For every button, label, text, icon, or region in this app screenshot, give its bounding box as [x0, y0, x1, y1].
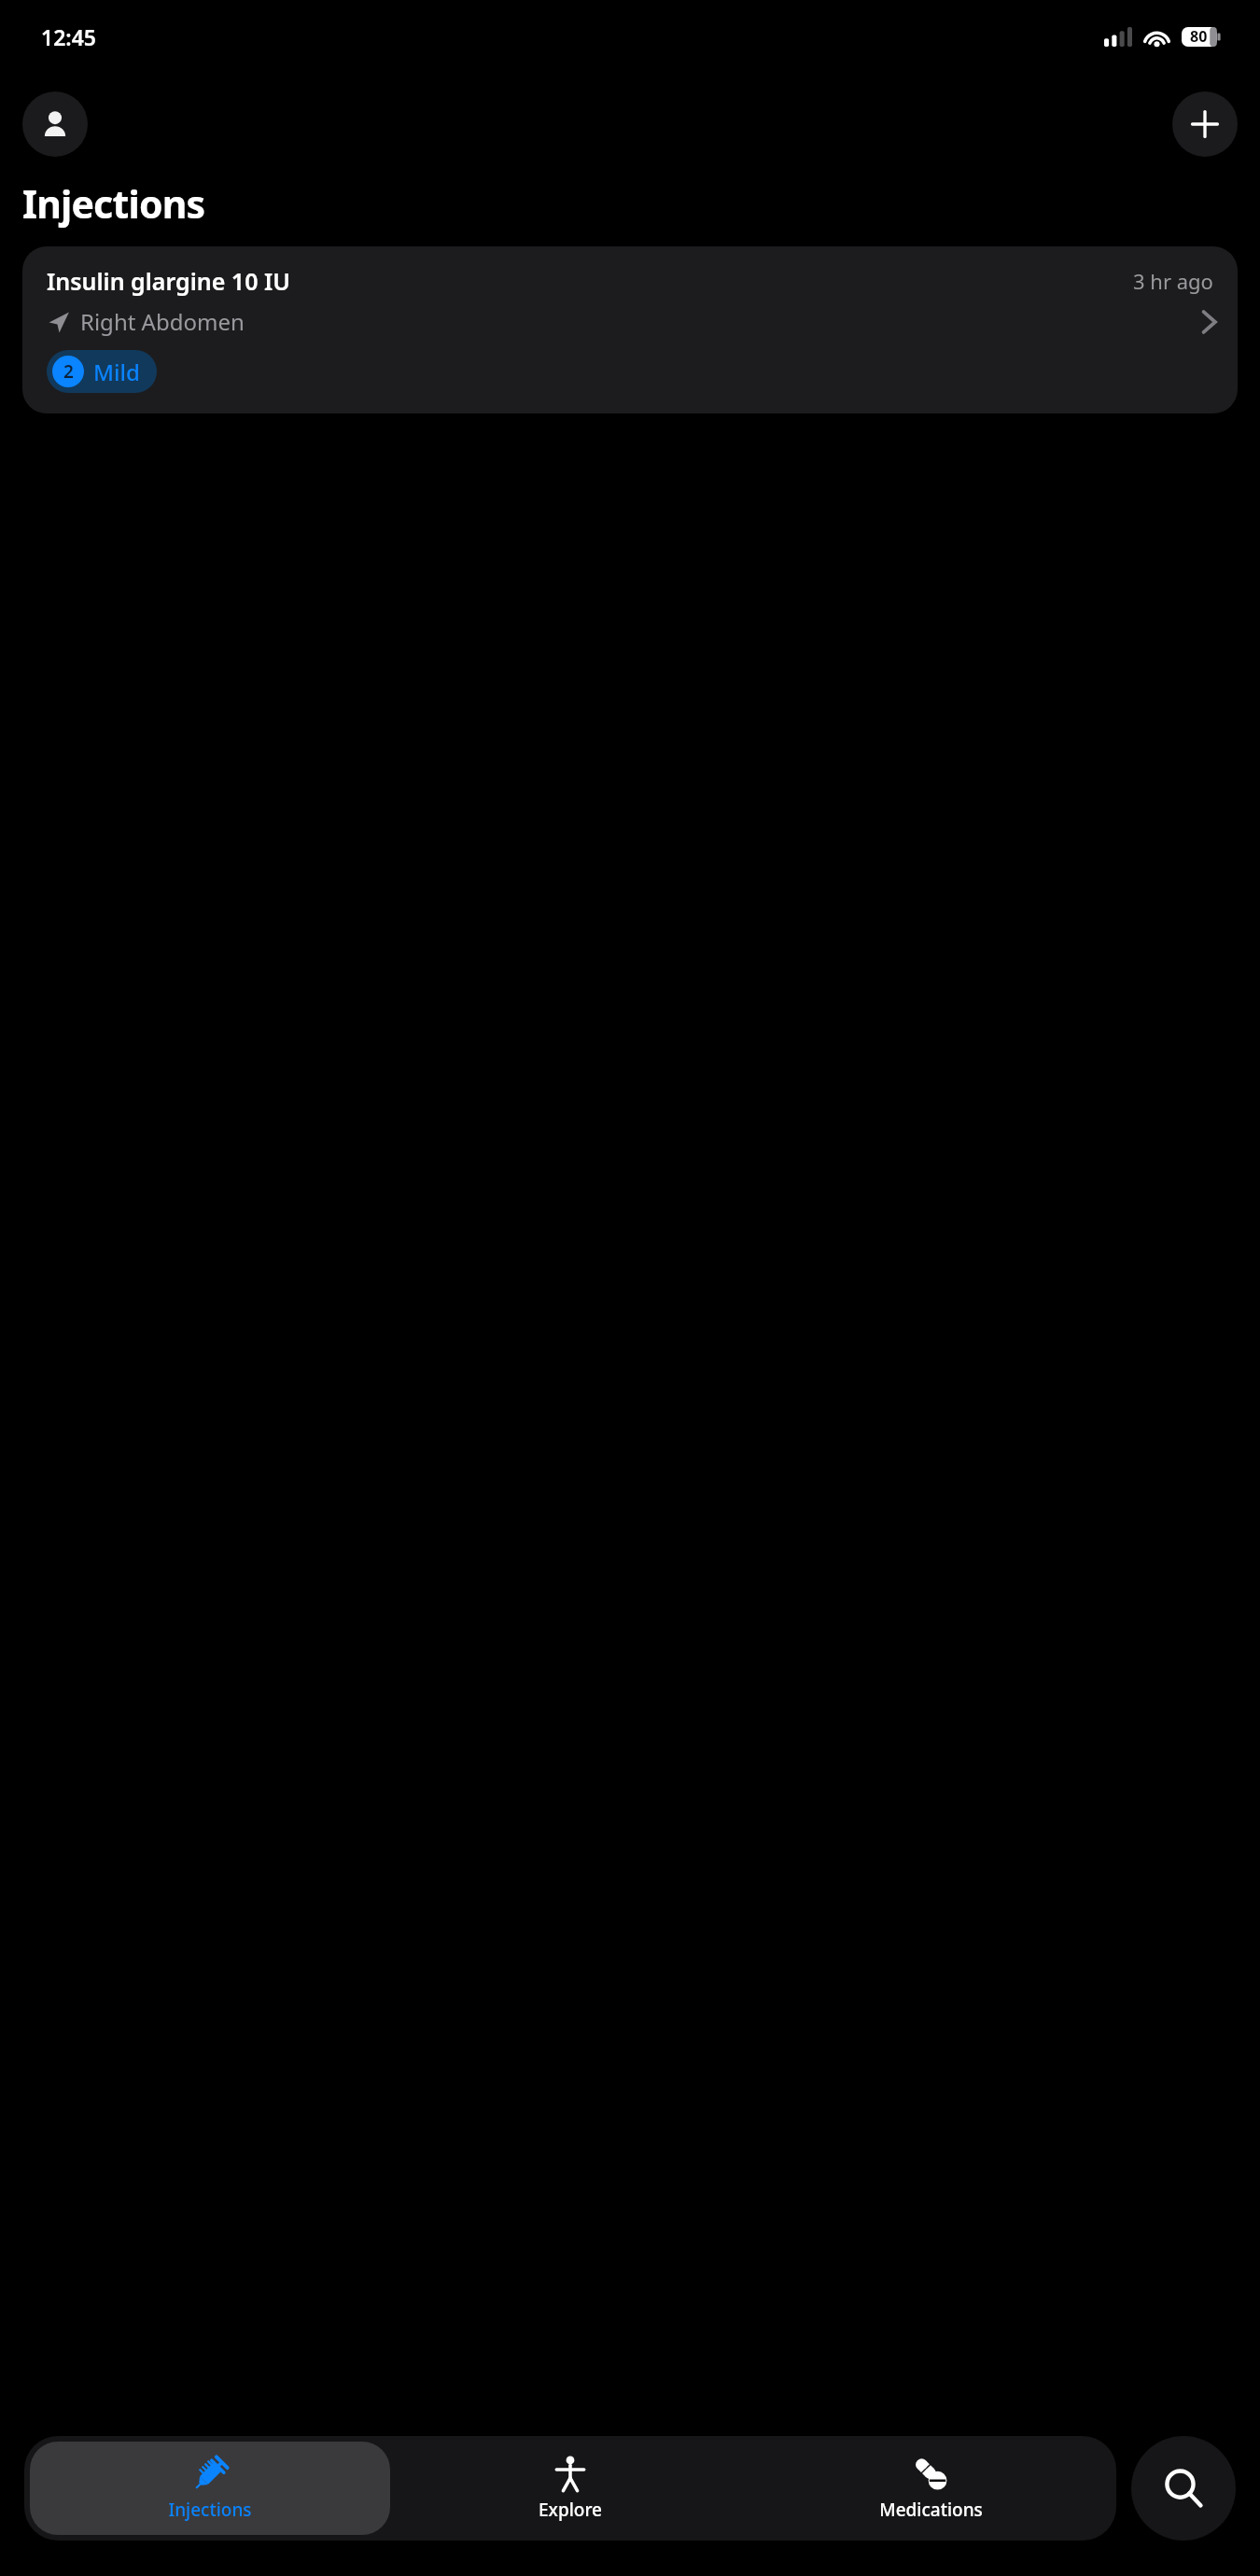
staticText: 12:45: [41, 22, 96, 51]
button[interactable]: Explore: [390, 2442, 750, 2535]
button[interactable]: 2: [47, 350, 157, 393]
button[interactable]: Injections: [30, 2442, 390, 2535]
staticText: 2: [63, 359, 74, 384]
staticText: 3 hr ago: [1133, 267, 1213, 295]
staticText: Insulin glargine 10 IU: [47, 265, 290, 297]
button[interactable]: Profile: [22, 91, 88, 157]
staticText: Injections: [168, 2498, 252, 2522]
button[interactable]: Insulin glargine 10 IU: [22, 246, 1238, 413]
staticText: Explore: [539, 2498, 602, 2522]
button[interactable]: Search: [1131, 2436, 1236, 2541]
staticText: Injections: [22, 177, 205, 230]
staticText: Medications: [879, 2498, 983, 2522]
staticText: Mild: [93, 357, 140, 387]
button[interactable]: Medications: [750, 2442, 1111, 2535]
staticText: Right Abdomen: [80, 306, 245, 337]
button[interactable]: Add injection: [1172, 91, 1238, 157]
staticText: 80: [1190, 26, 1208, 47]
